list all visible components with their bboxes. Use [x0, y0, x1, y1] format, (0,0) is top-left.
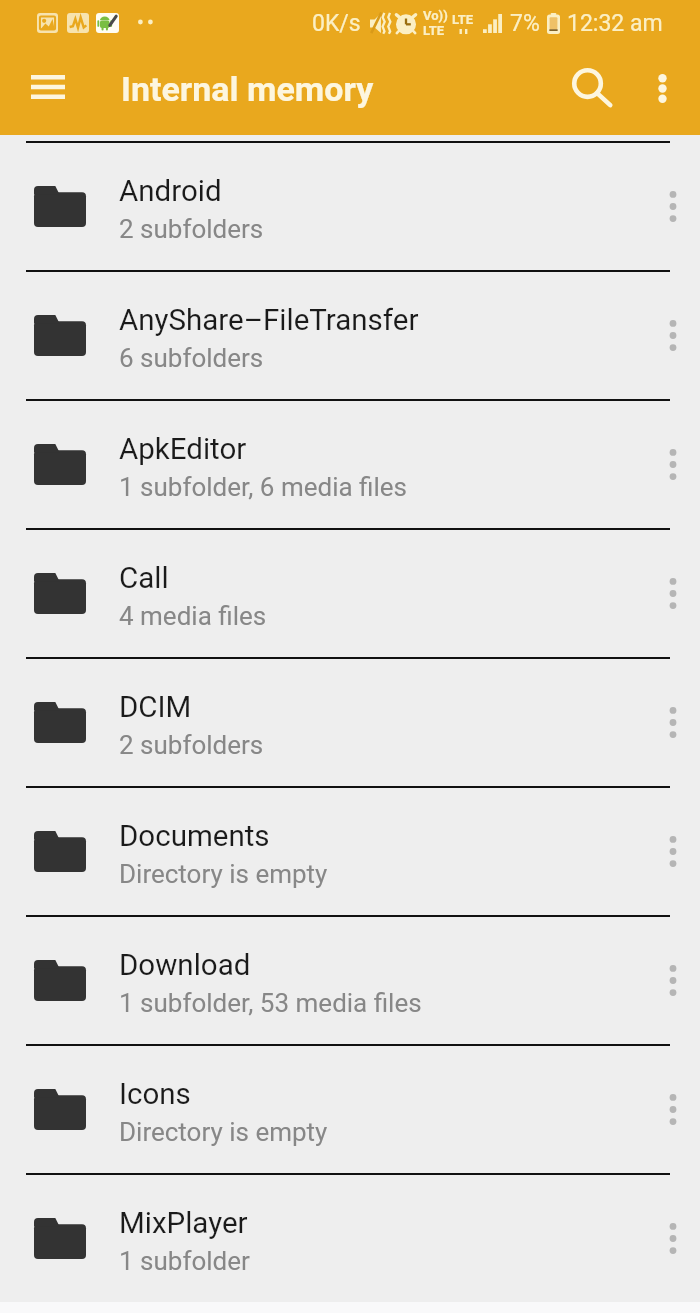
button[interactable]: Item options: [645, 1175, 700, 1302]
button[interactable]: DCIM: [0, 659, 700, 786]
staticText: 7%: [510, 10, 540, 37]
staticText: 1 subfolder, 53 media files: [119, 988, 422, 1018]
button[interactable]: Item options: [645, 530, 700, 657]
staticText: DCIM: [119, 690, 192, 725]
staticText: 6 subfolders: [119, 343, 264, 373]
staticText: Internal memory: [121, 69, 374, 109]
staticText: Documents: [119, 819, 270, 854]
button[interactable]: Item options: [645, 272, 700, 399]
button[interactable]: Documents: [0, 788, 700, 915]
button[interactable]: Item options: [645, 143, 700, 270]
button[interactable]: Item options: [645, 659, 700, 786]
button[interactable]: Item options: [645, 401, 700, 528]
staticText: 4 media files: [119, 601, 267, 631]
button[interactable]: More options: [634, 60, 690, 116]
staticText: Directory is empty: [119, 859, 328, 889]
button[interactable]: Item options: [645, 917, 700, 1044]
button[interactable]: MixPlayer: [0, 1175, 700, 1302]
staticText: MixPlayer: [119, 1206, 248, 1241]
staticText: 2 subfolders: [119, 730, 264, 760]
button[interactable]: ApkEditor: [0, 401, 700, 528]
staticText: 0K/s: [312, 10, 361, 37]
button[interactable]: Android: [0, 143, 700, 270]
staticText: 2 subfolders: [119, 214, 264, 244]
staticText: 1 subfolder, 6 media files: [119, 472, 408, 502]
button[interactable]: Download: [0, 917, 700, 1044]
button[interactable]: Search: [560, 56, 626, 122]
button[interactable]: Icons: [0, 1046, 700, 1173]
staticText: Android: [119, 174, 222, 209]
button[interactable]: Open navigation drawer: [20, 59, 76, 115]
staticText: LTE: [423, 23, 445, 38]
button[interactable]: Item options: [645, 788, 700, 915]
staticText: Download: [119, 948, 251, 983]
staticText: Directory is empty: [119, 1117, 328, 1147]
button[interactable]: Item options: [645, 1046, 700, 1173]
staticText: Call: [119, 561, 169, 596]
staticText: 1 subfolder: [119, 1246, 250, 1276]
staticText: Icons: [119, 1077, 191, 1112]
staticText: ApkEditor: [119, 432, 247, 467]
staticText: 12:32 am: [567, 10, 663, 37]
button[interactable]: AnyShare–FileTransfer: [0, 272, 700, 399]
staticText: Vo)): [423, 8, 448, 23]
button[interactable]: Call: [0, 530, 700, 657]
staticText: LTE: [452, 12, 474, 27]
staticText: AnyShare–FileTransfer: [119, 303, 419, 338]
